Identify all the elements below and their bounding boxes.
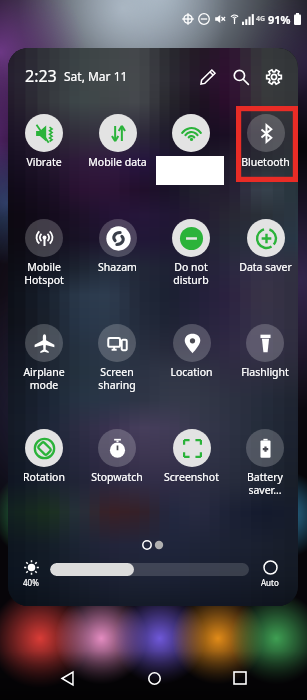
button[interactable]: Do not disturb — [154, 219, 228, 295]
button[interactable]: Airplane mode — [8, 324, 81, 400]
button[interactable]: Bluetooth — [228, 114, 298, 190]
staticText: Do not disturb — [173, 260, 209, 287]
staticText: Sat, Mar 11 — [64, 68, 128, 84]
staticText: 4G — [256, 14, 266, 24]
button[interactable]: Screenshot — [154, 429, 228, 505]
button[interactable]: Mobile Hotspot — [8, 219, 81, 295]
staticText: Shazam — [98, 260, 137, 274]
button[interactable]: Screen sharing — [80, 324, 154, 400]
staticText: Data saver — [239, 260, 292, 274]
button[interactable]: Recents — [220, 658, 260, 698]
staticText: Vibrate — [26, 155, 62, 169]
staticText: Bluetooth — [241, 155, 290, 169]
button[interactable]: Data saver — [228, 219, 298, 295]
staticText: Stopwatch — [91, 470, 143, 484]
staticText: Flashlight — [241, 365, 289, 379]
staticText: 91% — [268, 12, 291, 27]
button[interactable]: Stopwatch — [80, 429, 154, 505]
button[interactable]: Mobile data — [80, 114, 154, 190]
staticText: Screenshot — [164, 470, 219, 484]
staticText: Mobile data — [88, 155, 147, 169]
staticText: Wi-Fi — [179, 155, 204, 169]
button[interactable] — [50, 563, 249, 576]
staticText: 40% — [23, 577, 39, 588]
button[interactable]: Wi-Fi — [154, 114, 228, 190]
staticText: Battery saver… — [247, 470, 283, 497]
button[interactable]: Location — [154, 324, 228, 400]
staticText: Location — [170, 365, 213, 379]
button[interactable]: Home — [134, 658, 174, 698]
staticText: 2:23 — [25, 65, 57, 87]
staticText: Airplane mode — [23, 365, 65, 392]
button[interactable]: Vibrate — [8, 114, 81, 190]
button[interactable]: Flashlight — [228, 324, 298, 400]
button[interactable]: Edit — [191, 60, 224, 93]
button[interactable]: Search — [224, 60, 257, 93]
button[interactable]: Settings — [257, 60, 290, 93]
staticText: Auto — [261, 577, 279, 588]
staticText: Screen sharing — [98, 365, 136, 392]
button[interactable]: Rotation — [8, 429, 81, 505]
button[interactable]: Battery saver… — [228, 429, 298, 505]
staticText: Mobile Hotspot — [24, 260, 64, 287]
staticText: Rotation — [23, 470, 65, 484]
button[interactable]: Shazam — [80, 219, 154, 295]
button[interactable]: Back — [47, 658, 87, 698]
